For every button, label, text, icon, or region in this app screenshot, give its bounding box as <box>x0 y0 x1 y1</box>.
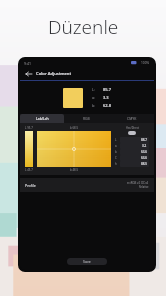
staticText: Profile <box>25 183 36 188</box>
staticText: b: <box>92 103 96 108</box>
button[interactable]: Lab/Lch <box>20 114 64 123</box>
staticText: a: <box>92 95 95 100</box>
staticText: Hex/Direct <box>126 126 139 130</box>
staticText: CMYK <box>127 116 137 121</box>
staticText: L 95.7 <box>25 126 33 130</box>
button[interactable]: Profile <box>20 178 154 192</box>
staticText: Color Adjustment <box>36 71 72 77</box>
button[interactable]: Colour field <box>37 131 111 167</box>
staticText: 63.6 <box>141 150 147 154</box>
staticText: 3.3 <box>103 95 109 100</box>
button[interactable]: Save <box>67 258 107 265</box>
button[interactable]: RGB <box>64 114 109 123</box>
button[interactable]: CMYK <box>109 114 154 123</box>
staticText: 63.6 <box>141 156 147 160</box>
button[interactable]: 63.6 <box>120 155 149 161</box>
button[interactable]: Current colour swatch <box>63 88 83 108</box>
staticText: a <box>115 144 120 148</box>
staticText: Save <box>83 259 91 264</box>
staticText: Relative <box>139 185 149 189</box>
button[interactable]: Direct toggle <box>128 131 136 135</box>
button[interactable]: 63.6 <box>120 149 149 155</box>
staticText: L <box>115 138 120 142</box>
staticText: L: <box>92 87 95 92</box>
staticText: 85.7 <box>103 87 111 92</box>
staticText: 88.5 <box>141 162 147 166</box>
staticText: 62.8 <box>103 103 111 108</box>
staticText: Lab/Lch <box>36 116 49 121</box>
staticText: 3.2 <box>142 144 147 148</box>
button[interactable]: Lightness slider <box>25 131 33 167</box>
button[interactable]: 88.5 <box>120 161 149 167</box>
staticText: L 45.7 <box>25 168 33 172</box>
staticText: b <box>115 150 120 154</box>
staticText: b 48.5 <box>70 168 78 172</box>
staticText: 9:41 <box>24 61 31 66</box>
staticText: C <box>115 156 120 160</box>
button[interactable]: 88.7 <box>120 137 149 143</box>
button[interactable]: 3.2 <box>120 143 149 149</box>
staticText: Düzenle <box>48 14 119 40</box>
staticText: eciRGB v2 ICCv4 <box>127 181 149 185</box>
staticText: b 68.5 <box>70 126 78 130</box>
staticText: 100% <box>141 61 150 65</box>
staticText: RGB <box>83 116 90 121</box>
staticText: h <box>115 162 120 166</box>
button[interactable]: Back <box>24 69 33 78</box>
staticText: 88.7 <box>141 138 147 142</box>
